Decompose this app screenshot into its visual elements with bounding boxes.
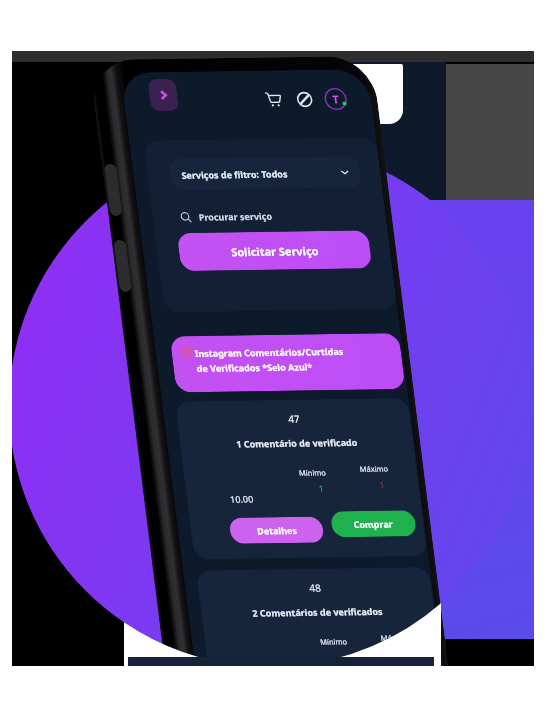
staticText: 48 bbox=[302, 575, 328, 601]
staticText: Detalhes bbox=[251, 504, 303, 556]
staticText: Mínimo bbox=[315, 623, 352, 660]
button[interactable]: Profile bbox=[311, 75, 359, 123]
staticText: Solicitar Serviço bbox=[224, 200, 327, 303]
staticText: T bbox=[325, 88, 347, 110]
button[interactable]: Comprar bbox=[318, 469, 428, 579]
button[interactable]: Language bbox=[280, 75, 328, 123]
staticText: Instagram Comentários/Curtidas de Verifi… bbox=[182, 272, 358, 447]
staticText: 1 bbox=[313, 480, 329, 496]
staticText: 1 Comentário de verificado bbox=[230, 376, 364, 510]
button[interactable]: Detalhes bbox=[217, 471, 336, 590]
staticText: Serviços de filtro: Todos bbox=[175, 115, 293, 233]
button[interactable]: Solicitar Serviço bbox=[160, 136, 389, 365]
button[interactable]: Cart bbox=[249, 75, 297, 123]
staticText: Máximo bbox=[354, 449, 394, 488]
staticText: 10.00 bbox=[224, 481, 260, 517]
staticText: 1 bbox=[374, 476, 390, 492]
staticText: Mínimo bbox=[294, 454, 331, 491]
staticText: Comprar bbox=[347, 498, 399, 550]
staticText: 2 Comentários de verificados bbox=[246, 540, 389, 683]
button[interactable]: Instagram Comentários/Curtidas de Verifi… bbox=[145, 220, 430, 505]
staticText: Procurar serviço bbox=[193, 173, 279, 259]
button[interactable]: Back bbox=[133, 65, 193, 125]
staticText: 47 bbox=[281, 406, 307, 432]
staticText: Máximo bbox=[376, 618, 415, 657]
button[interactable]: Serviços de filtro: Todos bbox=[155, 63, 376, 283]
